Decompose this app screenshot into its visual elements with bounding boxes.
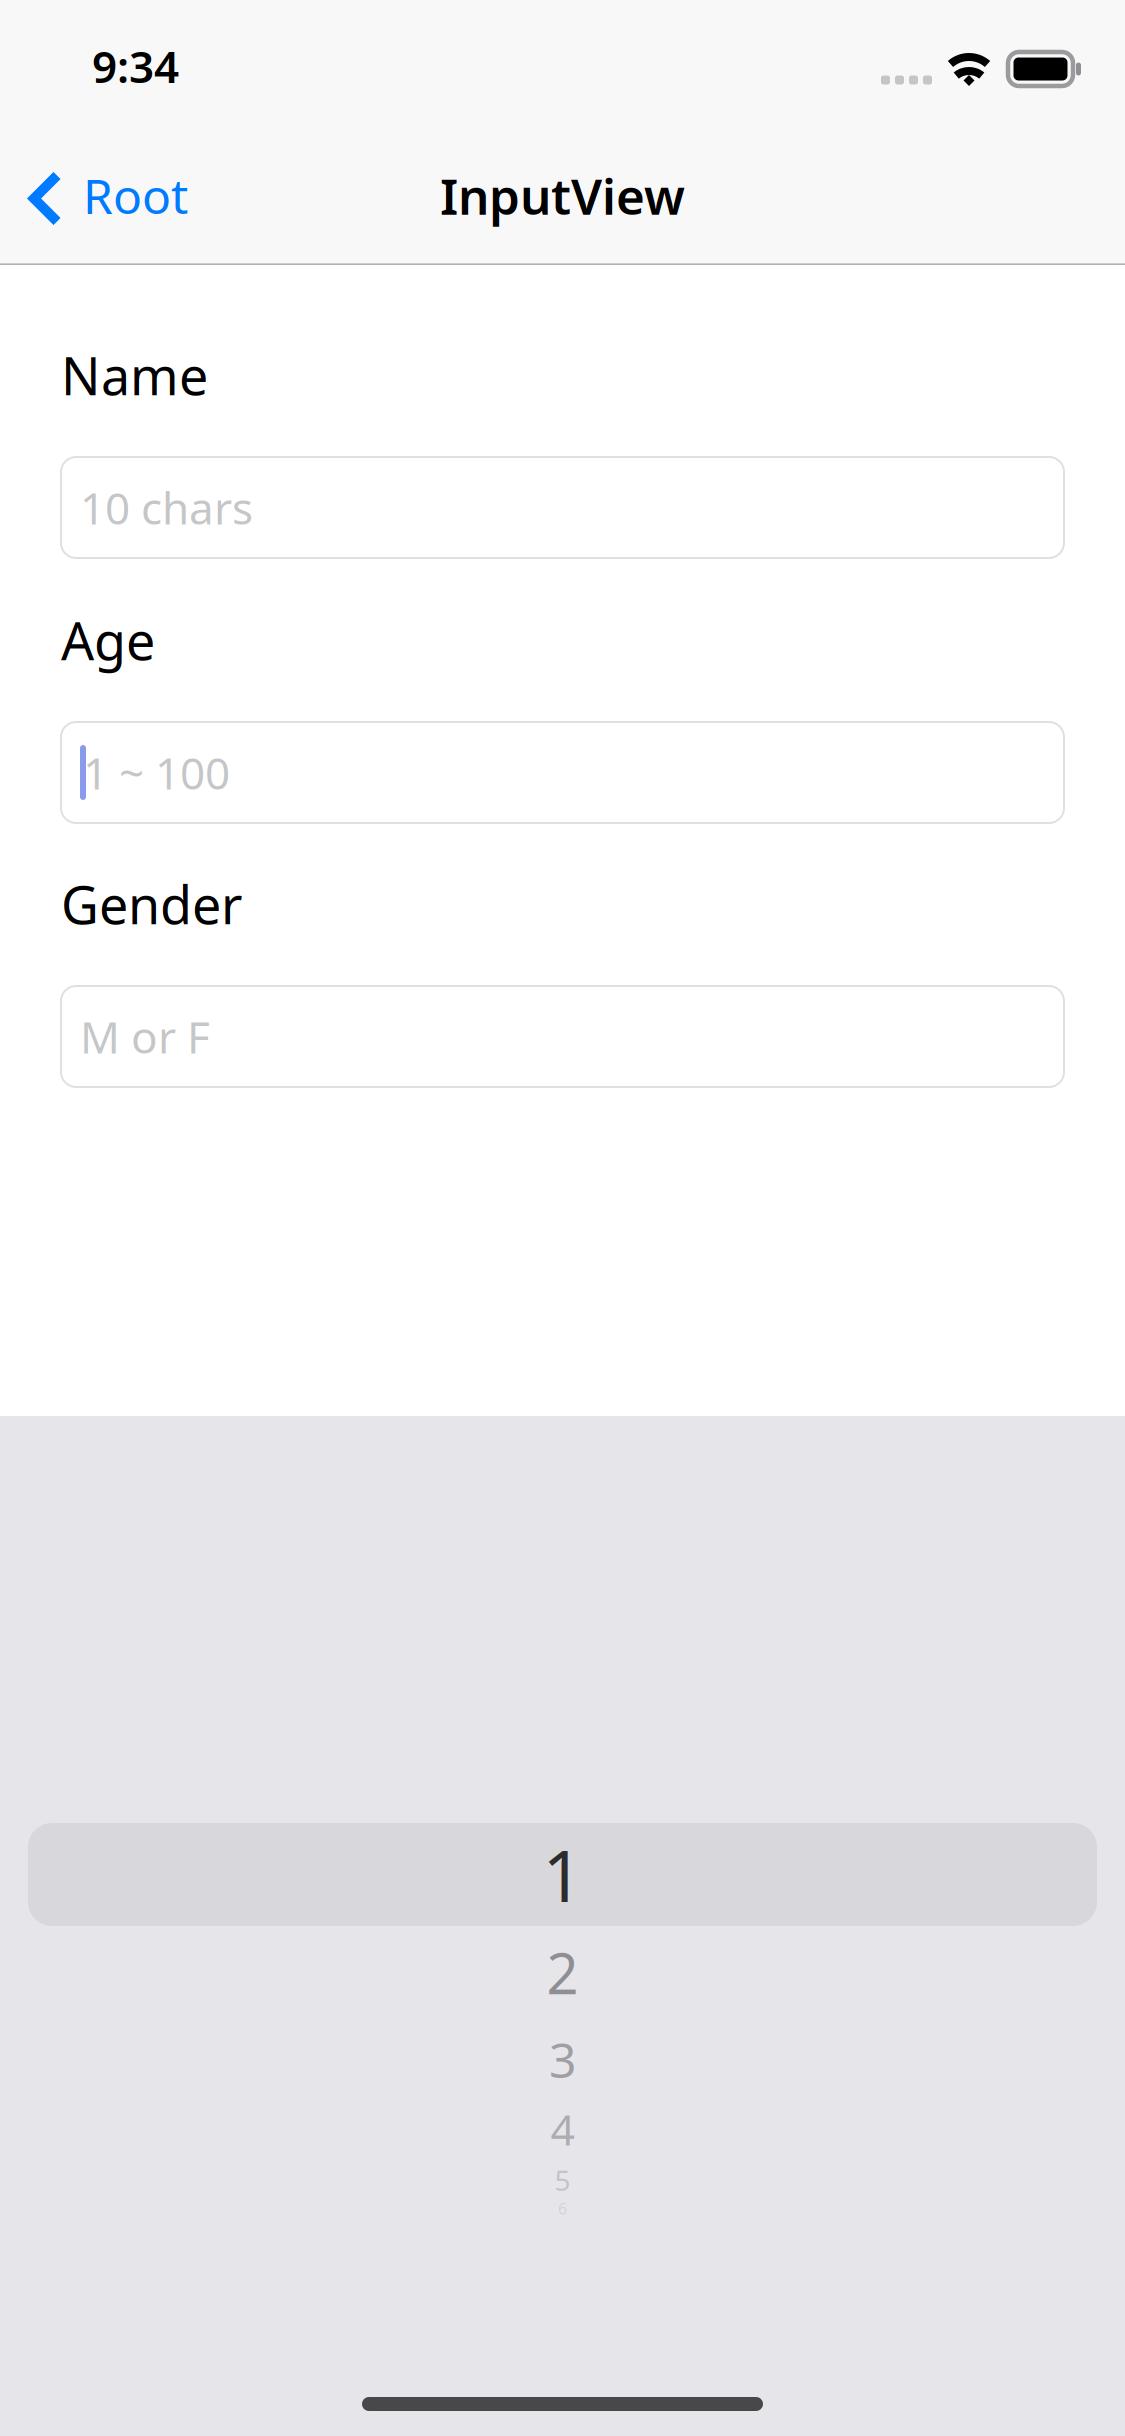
staticText: 5 — [554, 2161, 570, 2199]
staticText: 1 ~ 100 — [83, 743, 230, 802]
staticText: 10 chars — [80, 478, 253, 537]
staticText: Name — [61, 340, 208, 410]
staticText: 6 — [558, 2198, 567, 2219]
button[interactable]: 1 ~ 100 — [61, 722, 1064, 823]
staticText: Root — [83, 164, 188, 227]
button[interactable]: 10 chars — [61, 457, 1064, 558]
staticText: M or F — [80, 1007, 210, 1066]
staticText: InputView — [440, 163, 685, 228]
staticText: 3 — [549, 2028, 576, 2091]
button[interactable]: Root — [0, 147, 212, 250]
staticText: 1 — [542, 1828, 582, 1921]
staticText: 2 — [546, 1935, 578, 2010]
button[interactable]: M or F — [61, 986, 1064, 1087]
staticText: Gender — [61, 869, 242, 939]
staticText: Age — [61, 605, 155, 675]
staticText: 9:34 — [92, 37, 179, 95]
staticText: 4 — [550, 2101, 574, 2157]
